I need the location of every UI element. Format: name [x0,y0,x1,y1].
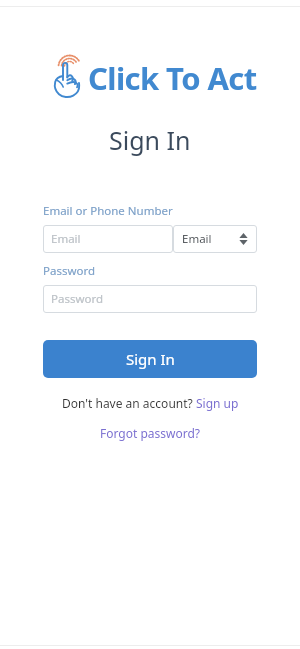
button[interactable]: Email [43,225,173,253]
button[interactable]: Select identifier type [173,225,257,253]
staticText: Forgot password? [100,425,201,441]
staticText: Don't have an account? [62,395,196,411]
staticText: Click To Act [88,57,257,99]
staticText: Password [51,291,104,307]
staticText: Email [51,231,81,247]
staticText: Sign In [109,123,191,157]
button[interactable]: Password [43,285,257,313]
staticText: Password [43,263,96,279]
button[interactable]: Sign In [43,340,257,378]
staticText: Email or Phone Number [43,203,173,219]
staticText: Sign up [196,395,239,411]
staticText: Sign In [126,349,175,369]
staticText: Email [182,231,212,247]
other: Click To Act logo [43,46,87,102]
button[interactable]: Sign up [196,395,239,411]
button[interactable]: Forgot password? [100,425,201,441]
